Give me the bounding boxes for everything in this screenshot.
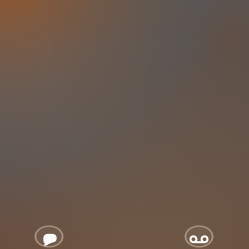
button[interactable]: Message	[26, 216, 72, 249]
button[interactable]: Voicemail	[176, 216, 222, 249]
